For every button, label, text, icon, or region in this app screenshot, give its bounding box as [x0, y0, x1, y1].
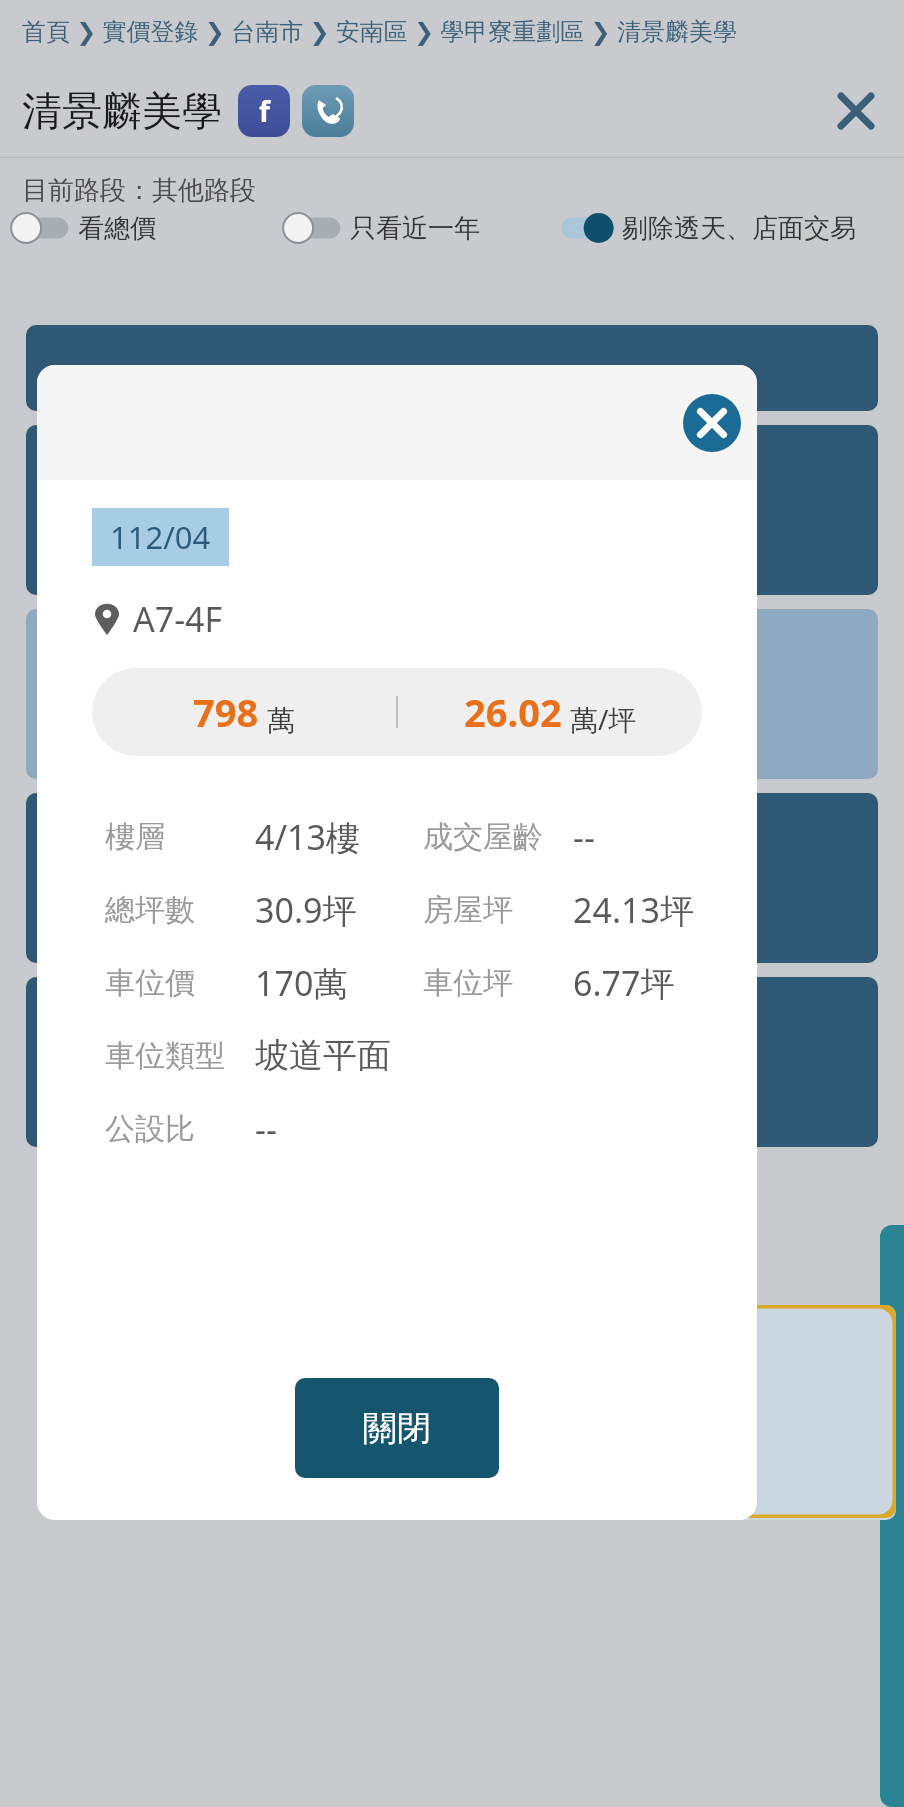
button[interactable]: 看總價	[10, 211, 282, 245]
staticText: 車位坪	[423, 964, 513, 1002]
staticText: 6.77坪	[573, 960, 675, 1006]
button[interactable]: Phone	[302, 85, 354, 137]
staticText: 798	[193, 686, 259, 738]
staticText: 車位價	[105, 964, 195, 1002]
staticText: 車位類型	[105, 1037, 225, 1075]
staticText: 目前路段：其他路段	[22, 174, 256, 207]
staticText: 總坪數	[105, 891, 195, 929]
staticText: 房屋坪	[423, 891, 513, 929]
staticText: 樓層	[105, 818, 165, 856]
staticText: f	[259, 92, 270, 130]
button[interactable]: 關閉	[295, 1378, 499, 1478]
staticText: 24.13坪	[573, 887, 694, 933]
staticText: 萬	[267, 703, 295, 738]
staticText: 成交屋齡	[423, 818, 543, 856]
staticText: 萬/坪	[570, 700, 637, 738]
staticText: 112/04	[110, 516, 211, 558]
staticText: 剔除透天、店面交易	[622, 212, 856, 245]
staticText: 首頁 ❯ 實價登錄 ❯ 台南市 ❯ 安南區 ❯ 學甲寮重劃區 ❯ 清景麟美學	[22, 14, 737, 47]
button[interactable]: Close dialog	[681, 392, 743, 454]
staticText: 26.02	[464, 686, 562, 738]
staticText: 看總價	[78, 212, 156, 245]
button[interactable]: Facebook	[238, 85, 290, 137]
button[interactable]: Close	[828, 83, 884, 139]
staticText: A7-4F	[133, 596, 223, 642]
staticText: 坡道平面	[255, 1034, 391, 1077]
staticText: 公設比	[105, 1110, 195, 1148]
staticText: 只看近一年	[350, 212, 480, 245]
staticText: 關閉	[363, 1407, 431, 1450]
staticText: 清景麟美學	[22, 86, 222, 136]
staticText: 170萬	[255, 960, 348, 1006]
staticText: 4/13樓	[255, 814, 360, 860]
staticText: --	[255, 1106, 277, 1152]
staticText: --	[573, 814, 595, 860]
staticText: 30.9坪	[255, 887, 357, 933]
button[interactable]: 只看近一年	[282, 211, 554, 245]
button[interactable]: 剔除透天、店面交易	[554, 211, 894, 245]
